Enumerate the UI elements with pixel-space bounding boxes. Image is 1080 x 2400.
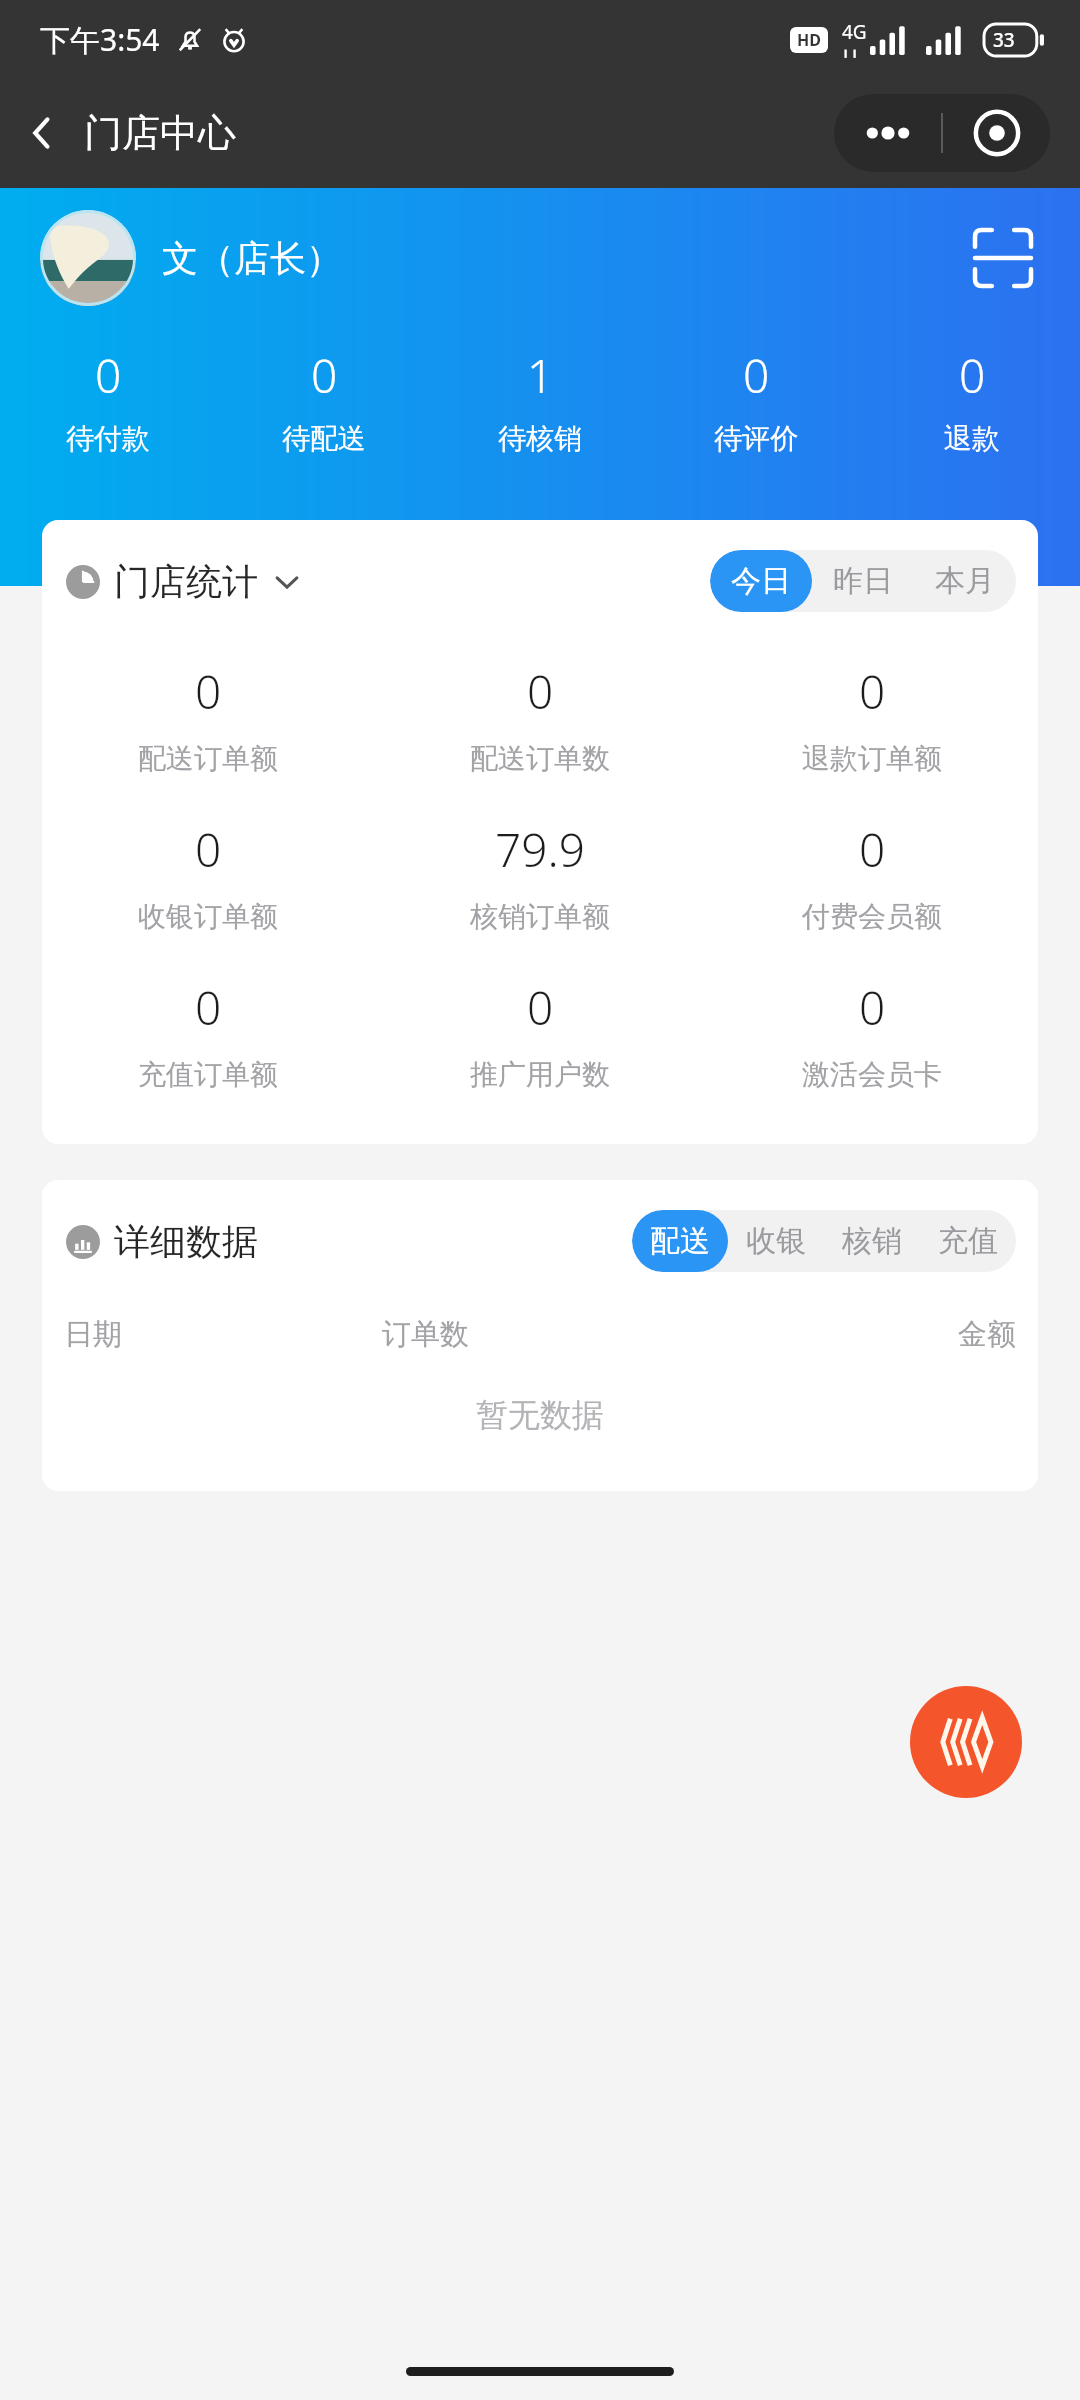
staticText: 0	[959, 344, 986, 407]
staticText: 0	[311, 344, 338, 407]
staticText: 收银订单额	[138, 899, 278, 934]
button[interactable]: 1	[432, 338, 648, 462]
button[interactable]: 0	[42, 976, 374, 1092]
staticText: 充值	[938, 1222, 998, 1260]
button[interactable]: 收银	[728, 1210, 824, 1272]
button[interactable]: 0	[706, 660, 1038, 776]
staticText: 门店统计	[114, 559, 258, 604]
staticText: 门店中心	[84, 109, 236, 157]
staticText: 昨日	[833, 562, 893, 600]
staticText: 配送订单数	[470, 741, 610, 776]
button[interactable]: 0	[648, 338, 864, 462]
staticText: 配送订单额	[138, 741, 278, 776]
staticText: 待核销	[498, 421, 582, 456]
button[interactable]: 客服	[910, 1686, 1022, 1798]
staticText: 暂无数据	[42, 1395, 1038, 1435]
button[interactable]: 核销	[824, 1210, 920, 1272]
staticText: 详细数据	[114, 1219, 258, 1264]
button[interactable]: 0	[374, 660, 706, 776]
staticText: 4G	[842, 19, 867, 45]
button[interactable]: 0	[42, 818, 374, 934]
button[interactable]: 充值	[920, 1210, 1016, 1272]
staticText: 0	[859, 976, 886, 1039]
staticText: 退款订单额	[802, 741, 942, 776]
button[interactable]: 0	[706, 818, 1038, 934]
staticText: 0	[195, 818, 222, 881]
staticText: 日期	[64, 1316, 382, 1353]
button[interactable]: 79.9	[374, 818, 706, 934]
staticText: 付费会员额	[802, 899, 942, 934]
button[interactable]: 关闭	[943, 94, 1050, 172]
button[interactable]: 返回	[0, 91, 84, 175]
button[interactable]: 0	[0, 338, 216, 462]
staticText: 待付款	[66, 421, 150, 456]
staticText: HD	[797, 29, 821, 51]
staticText: 下午3:54	[40, 19, 160, 60]
staticText: 充值订单额	[138, 1057, 278, 1092]
staticText: 推广用户数	[470, 1057, 610, 1092]
staticText: 1	[527, 344, 554, 407]
staticText: 金额	[699, 1316, 1016, 1353]
button[interactable]: 头像	[40, 210, 136, 306]
button[interactable]: 0	[864, 338, 1080, 462]
staticText: 0	[527, 976, 554, 1039]
button[interactable]: 配送	[632, 1210, 728, 1272]
staticText: 今日	[731, 562, 791, 600]
staticText: 待评价	[714, 421, 798, 456]
button[interactable]: 扫码	[966, 221, 1040, 295]
staticText: 订单数	[382, 1316, 699, 1353]
staticText: 0	[527, 660, 554, 723]
button[interactable]: 0	[42, 660, 374, 776]
staticText: 0	[743, 344, 770, 407]
button[interactable]: 0	[706, 976, 1038, 1092]
button[interactable]: 门店统计	[66, 559, 300, 604]
staticText: 激活会员卡	[802, 1057, 942, 1092]
staticText: 文（店长）	[162, 236, 342, 281]
staticText: 退款	[944, 421, 1000, 456]
button[interactable]: 0	[216, 338, 432, 462]
staticText: 33	[993, 27, 1015, 53]
button[interactable]: 详细数据	[66, 1219, 258, 1264]
button[interactable]: 昨日	[812, 550, 914, 612]
button[interactable]: 更多	[834, 94, 941, 172]
button[interactable]: 今日	[710, 550, 812, 612]
staticText: 配送	[650, 1222, 710, 1260]
staticText: 核销订单额	[470, 899, 610, 934]
staticText: 79.9	[495, 818, 586, 881]
staticText: 0	[859, 818, 886, 881]
staticText: 0	[195, 660, 222, 723]
staticText: 本月	[935, 562, 995, 600]
staticText: 0	[859, 660, 886, 723]
staticText: 待配送	[282, 421, 366, 456]
staticText: 0	[195, 976, 222, 1039]
staticText: 0	[95, 344, 122, 407]
button[interactable]: 本月	[914, 550, 1016, 612]
staticText: 收银	[746, 1222, 806, 1260]
staticText: 核销	[842, 1222, 902, 1260]
button[interactable]: 0	[374, 976, 706, 1092]
